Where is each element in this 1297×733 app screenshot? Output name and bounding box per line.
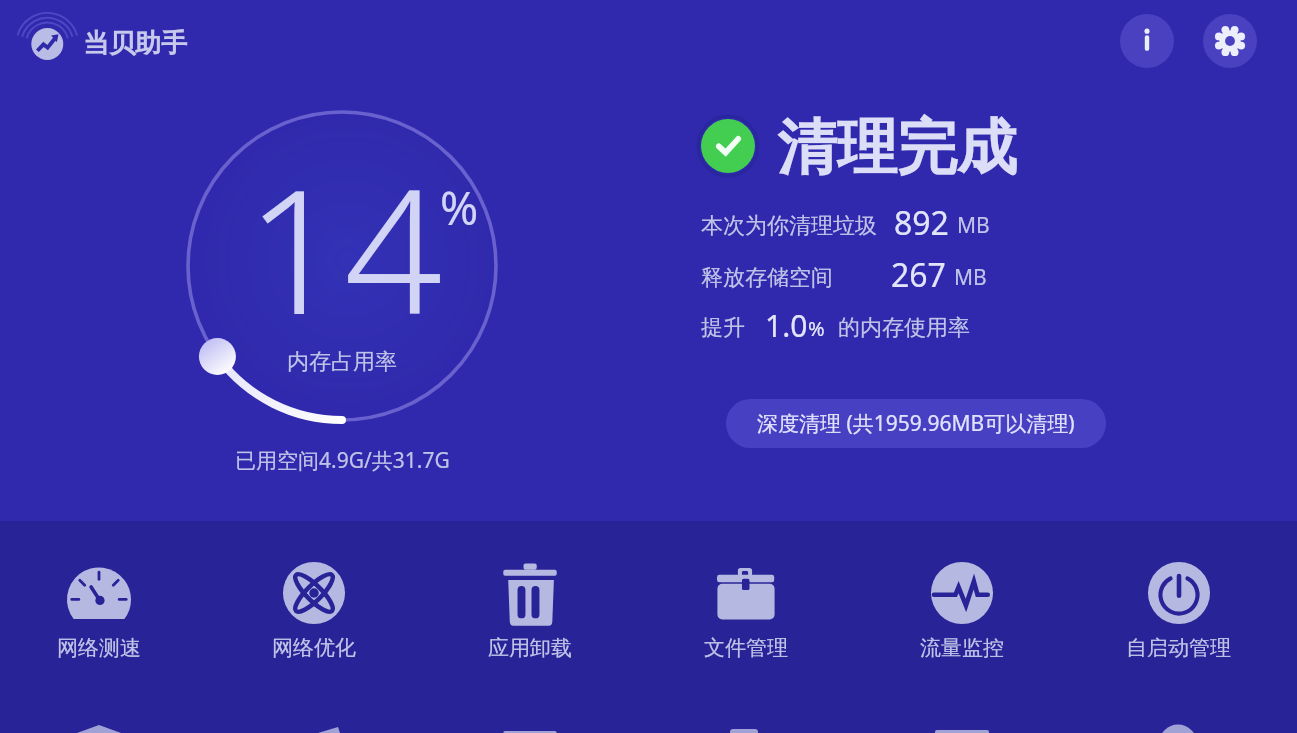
staticText: 流量监控 bbox=[920, 635, 1004, 661]
staticText: % bbox=[440, 176, 479, 239]
button[interactable]: 设备信息 bbox=[676, 718, 816, 733]
button[interactable]: 电源管理 bbox=[1108, 718, 1248, 733]
staticText: 的内存使用率 bbox=[838, 314, 970, 342]
button[interactable]: 应用卸载 bbox=[460, 560, 600, 676]
button[interactable]: 自启动管理 bbox=[1108, 560, 1248, 676]
staticText: 清理完成 bbox=[777, 110, 1017, 186]
staticText: 自启动管理 bbox=[1126, 635, 1231, 661]
button[interactable]: 流量监控 bbox=[892, 560, 1032, 676]
staticText: 文件管理 bbox=[704, 635, 788, 661]
button[interactable]: 当贝助手 bbox=[15, 7, 187, 75]
button[interactable]: Settings bbox=[1203, 14, 1257, 68]
staticText: 内存占用率 bbox=[287, 348, 397, 376]
button[interactable]: 文件管理 bbox=[676, 560, 816, 676]
staticText: 267 bbox=[891, 253, 946, 297]
staticText: MB bbox=[957, 211, 990, 240]
button[interactable]: 深度清理 (共1959.96MB可以清理) bbox=[726, 399, 1106, 448]
button[interactable]: Information bbox=[1120, 14, 1174, 68]
button[interactable]: 应用管理 bbox=[460, 718, 600, 733]
button[interactable]: 网络优化 bbox=[244, 560, 384, 676]
staticText: 网络优化 bbox=[272, 635, 356, 661]
staticText: MB bbox=[954, 263, 987, 292]
staticText: 深度清理 (共1959.96MB可以清理) bbox=[757, 409, 1075, 438]
staticText: 提升 bbox=[701, 314, 745, 342]
staticText: 本次为你清理垃圾 bbox=[701, 212, 877, 240]
staticText: 网络测速 bbox=[57, 635, 141, 661]
staticText: 当贝助手 bbox=[83, 27, 187, 60]
button[interactable]: 垃圾清理 bbox=[29, 718, 169, 733]
button[interactable]: 流量统计 bbox=[892, 718, 1032, 733]
staticText: 已用空间4.9G/共31.7G bbox=[235, 446, 450, 475]
button[interactable]: 网络加速 bbox=[244, 718, 384, 733]
button[interactable]: 网络测速 bbox=[29, 560, 169, 676]
staticText: 应用卸载 bbox=[488, 635, 572, 661]
staticText: 14 bbox=[246, 130, 443, 364]
staticText: % bbox=[808, 315, 825, 342]
staticText: 1.0 bbox=[765, 305, 808, 346]
staticText: 释放存储空间 bbox=[701, 264, 833, 292]
staticText: 892 bbox=[894, 201, 949, 245]
